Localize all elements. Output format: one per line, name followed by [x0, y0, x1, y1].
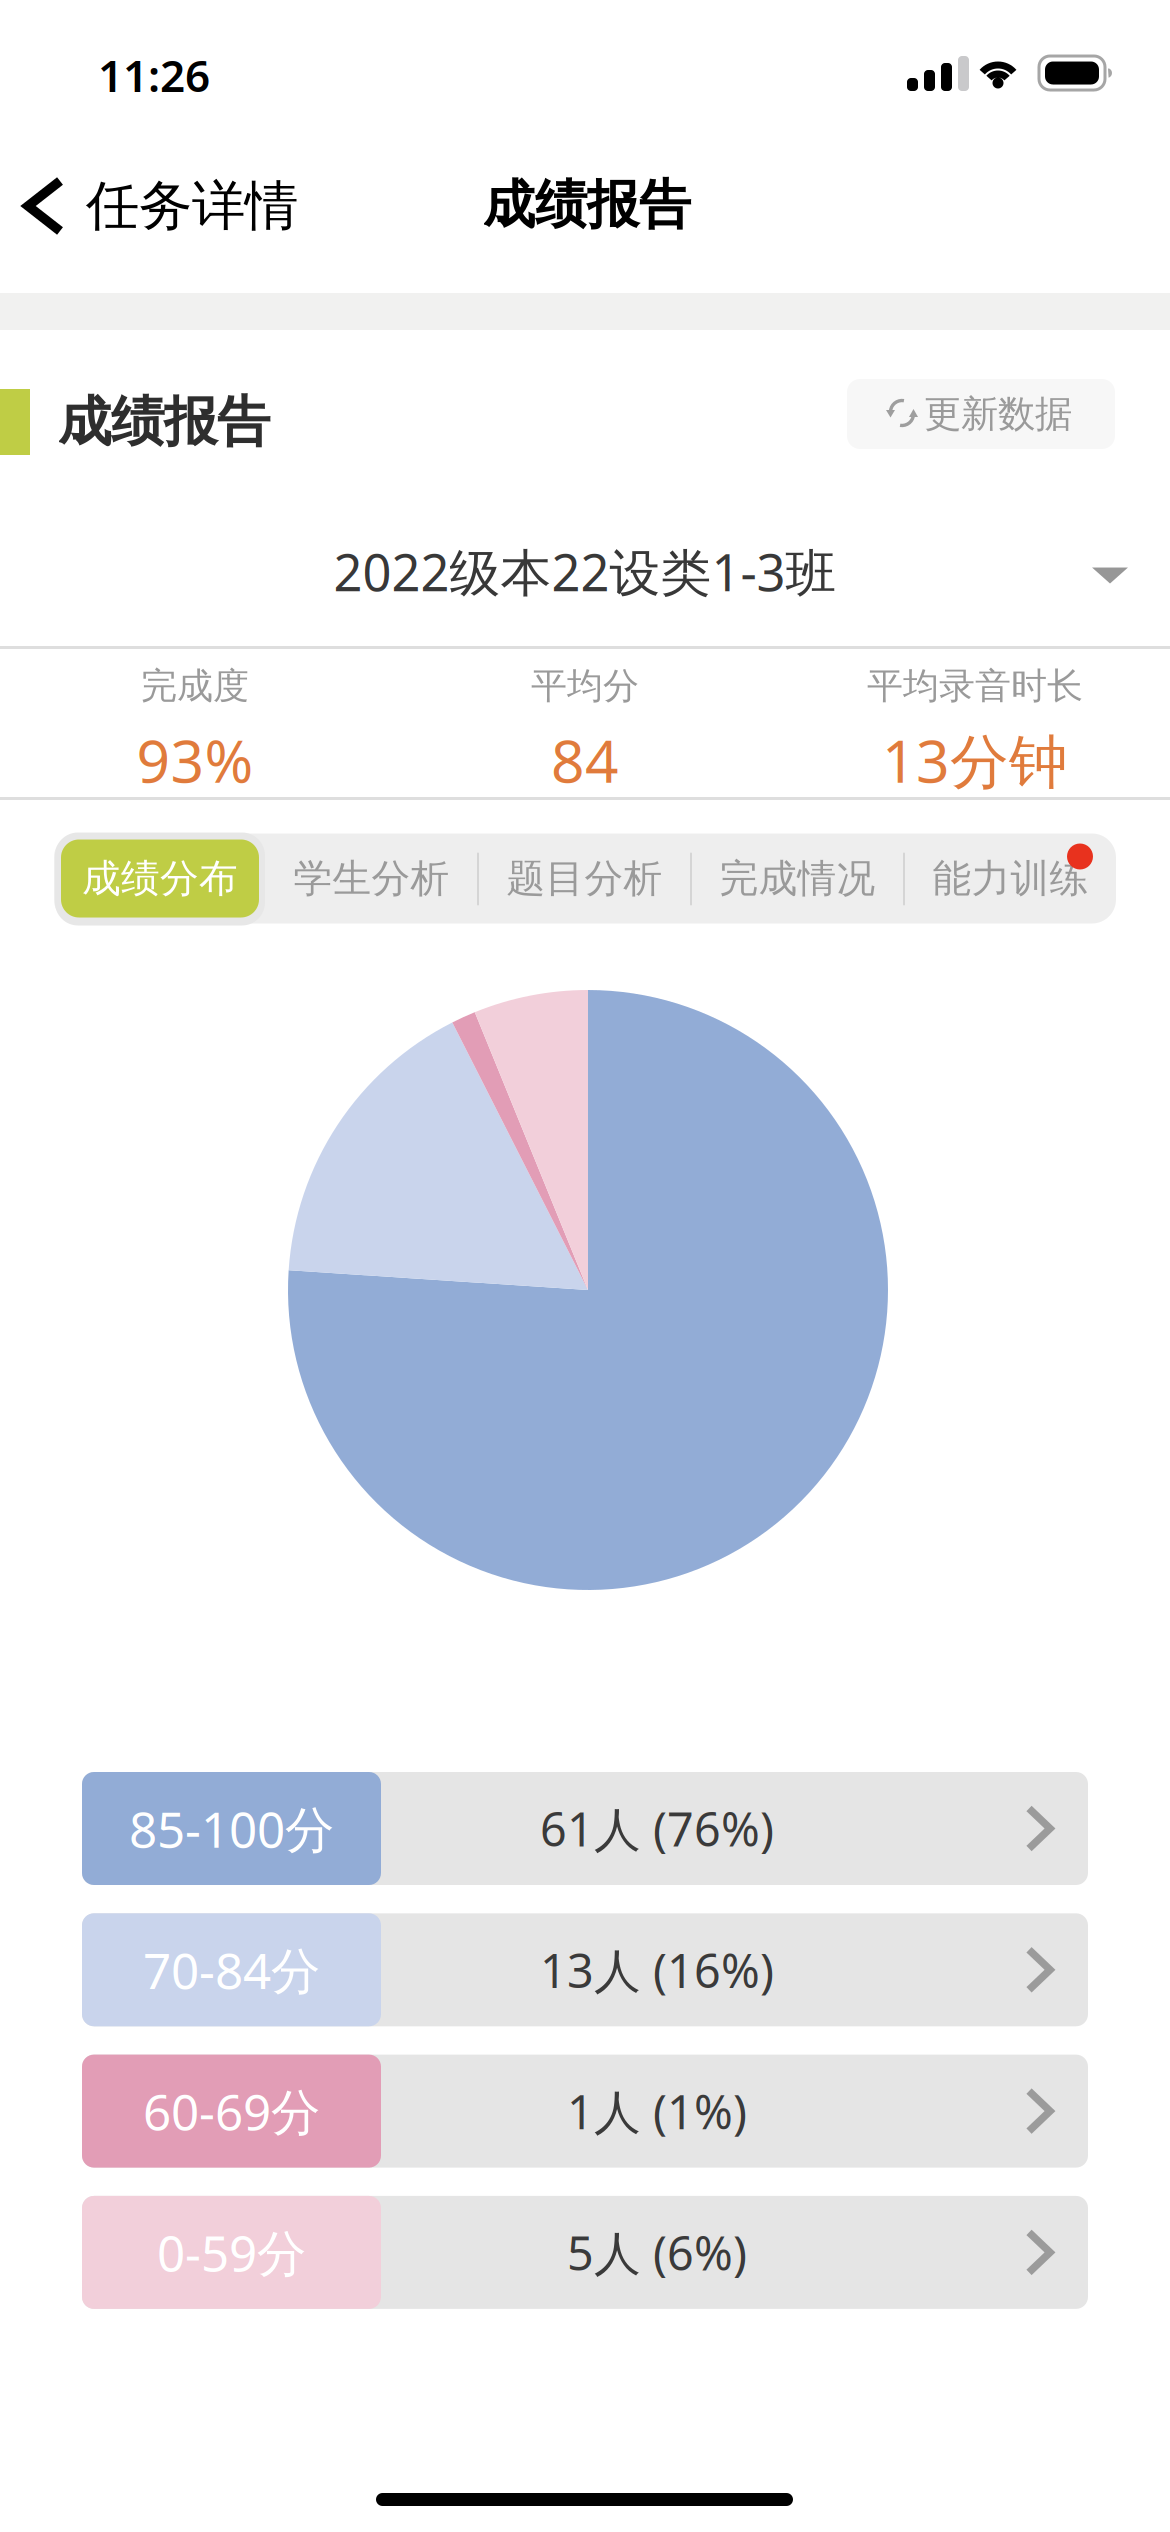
button[interactable]: 学生分析: [265, 839, 478, 917]
button[interactable]: 完成情况: [691, 839, 904, 917]
staticText: 任务详情: [86, 173, 298, 239]
staticText: 61人 (76%): [540, 1797, 774, 1859]
staticText: 0-59分: [157, 2220, 306, 2285]
staticText: 题目分析: [506, 855, 662, 902]
staticText: 1人 (1%): [567, 2080, 747, 2142]
staticText: 成绩分布: [82, 855, 238, 902]
button[interactable]: 60-69分: [82, 2055, 1088, 2168]
button[interactable]: 题目分析: [478, 839, 691, 917]
staticText: 5人 (6%): [567, 2221, 747, 2283]
staticText: 2022级本22设类1-3班: [333, 538, 836, 605]
staticText: 学生分析: [293, 855, 449, 902]
staticText: 成绩报告: [483, 173, 691, 237]
button[interactable]: 任务详情: [0, 151, 322, 261]
staticText: 能力训练: [932, 855, 1088, 902]
button[interactable]: 85-100分: [82, 1772, 1088, 1885]
button[interactable]: 成绩分布: [61, 839, 259, 917]
staticText: 84: [551, 721, 619, 799]
button[interactable]: 更新数据: [847, 379, 1115, 449]
staticText: 60-69分: [143, 2078, 320, 2144]
button[interactable]: 70-84分: [82, 1913, 1088, 2026]
staticText: 70-84分: [143, 1937, 320, 2002]
button[interactable]: 2022级本22设类1-3班: [0, 519, 1170, 624]
staticText: 更新数据: [924, 391, 1072, 437]
button[interactable]: 能力训练: [904, 839, 1117, 917]
staticText: 85-100分: [129, 1796, 334, 1861]
staticText: 11:26: [98, 46, 210, 104]
staticText: 成绩报告: [58, 389, 270, 455]
staticText: 平均录音时长: [867, 664, 1083, 708]
staticText: 完成情况: [719, 855, 875, 902]
staticText: 13人 (16%): [540, 1939, 774, 2001]
staticText: 平均分: [531, 664, 639, 708]
staticText: 93%: [136, 721, 253, 799]
button[interactable]: 0-59分: [82, 2196, 1088, 2309]
staticText: 13分钟: [882, 721, 1068, 799]
staticText: 完成度: [141, 664, 249, 708]
